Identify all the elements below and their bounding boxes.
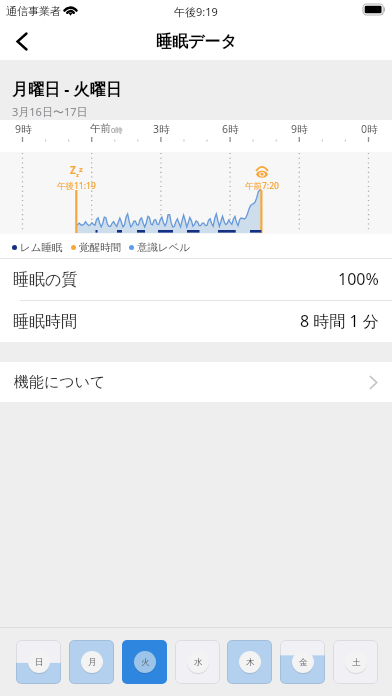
staticText: Z <box>70 163 76 175</box>
staticText: 月 <box>88 657 97 668</box>
staticText: 0時 <box>361 122 378 136</box>
staticText: z <box>76 171 79 179</box>
staticText: 覚醒時間 <box>79 241 121 254</box>
staticText: 水 <box>194 657 203 668</box>
button[interactable]: Back <box>0 22 44 60</box>
staticText: 土 <box>352 657 361 668</box>
staticText: 木 <box>246 657 255 668</box>
staticText: 3月16日〜17日 <box>12 104 88 119</box>
staticText: 睡眠時間 <box>13 312 77 332</box>
staticText: 100% <box>338 268 379 290</box>
staticText: レム睡眠 <box>20 241 63 254</box>
button[interactable]: 睡眠時間 <box>0 301 392 342</box>
button[interactable]: 睡眠の質 <box>0 259 392 300</box>
staticText: 0時 <box>111 125 123 135</box>
staticText: 火 <box>141 657 150 668</box>
staticText: 睡眠の質 <box>13 270 78 290</box>
staticText: 午前7:20 <box>245 180 279 192</box>
button[interactable]: 木 <box>227 640 272 684</box>
staticText: 睡眠データ <box>156 32 237 52</box>
staticText: 月曜日 - 火曜日 <box>12 78 122 100</box>
button[interactable]: 火 <box>122 640 167 684</box>
staticText: z <box>79 164 83 174</box>
staticText: 3時 <box>153 122 170 136</box>
staticText: 午後9:19 <box>174 4 218 19</box>
staticText: 午後11:19 <box>57 180 96 192</box>
staticText: 6時 <box>222 122 239 136</box>
staticText: 意識レベル <box>137 241 191 254</box>
staticText: 金 <box>299 657 308 668</box>
staticText: 日 <box>35 657 44 668</box>
button[interactable]: 水 <box>175 640 220 684</box>
button[interactable]: 日 <box>16 640 61 684</box>
staticText: 機能について <box>14 373 106 392</box>
button[interactable]: 土 <box>333 640 378 684</box>
button[interactable]: 機能について <box>0 362 392 402</box>
staticText: 9時 <box>15 122 32 136</box>
button[interactable]: 金 <box>280 640 325 684</box>
button[interactable]: 月 <box>69 640 114 684</box>
staticText: 9時 <box>291 122 308 136</box>
staticText: 午前 <box>90 122 111 135</box>
staticText: 通信事業者 <box>6 4 61 18</box>
staticText: 8 時間 1 分 <box>300 310 379 332</box>
